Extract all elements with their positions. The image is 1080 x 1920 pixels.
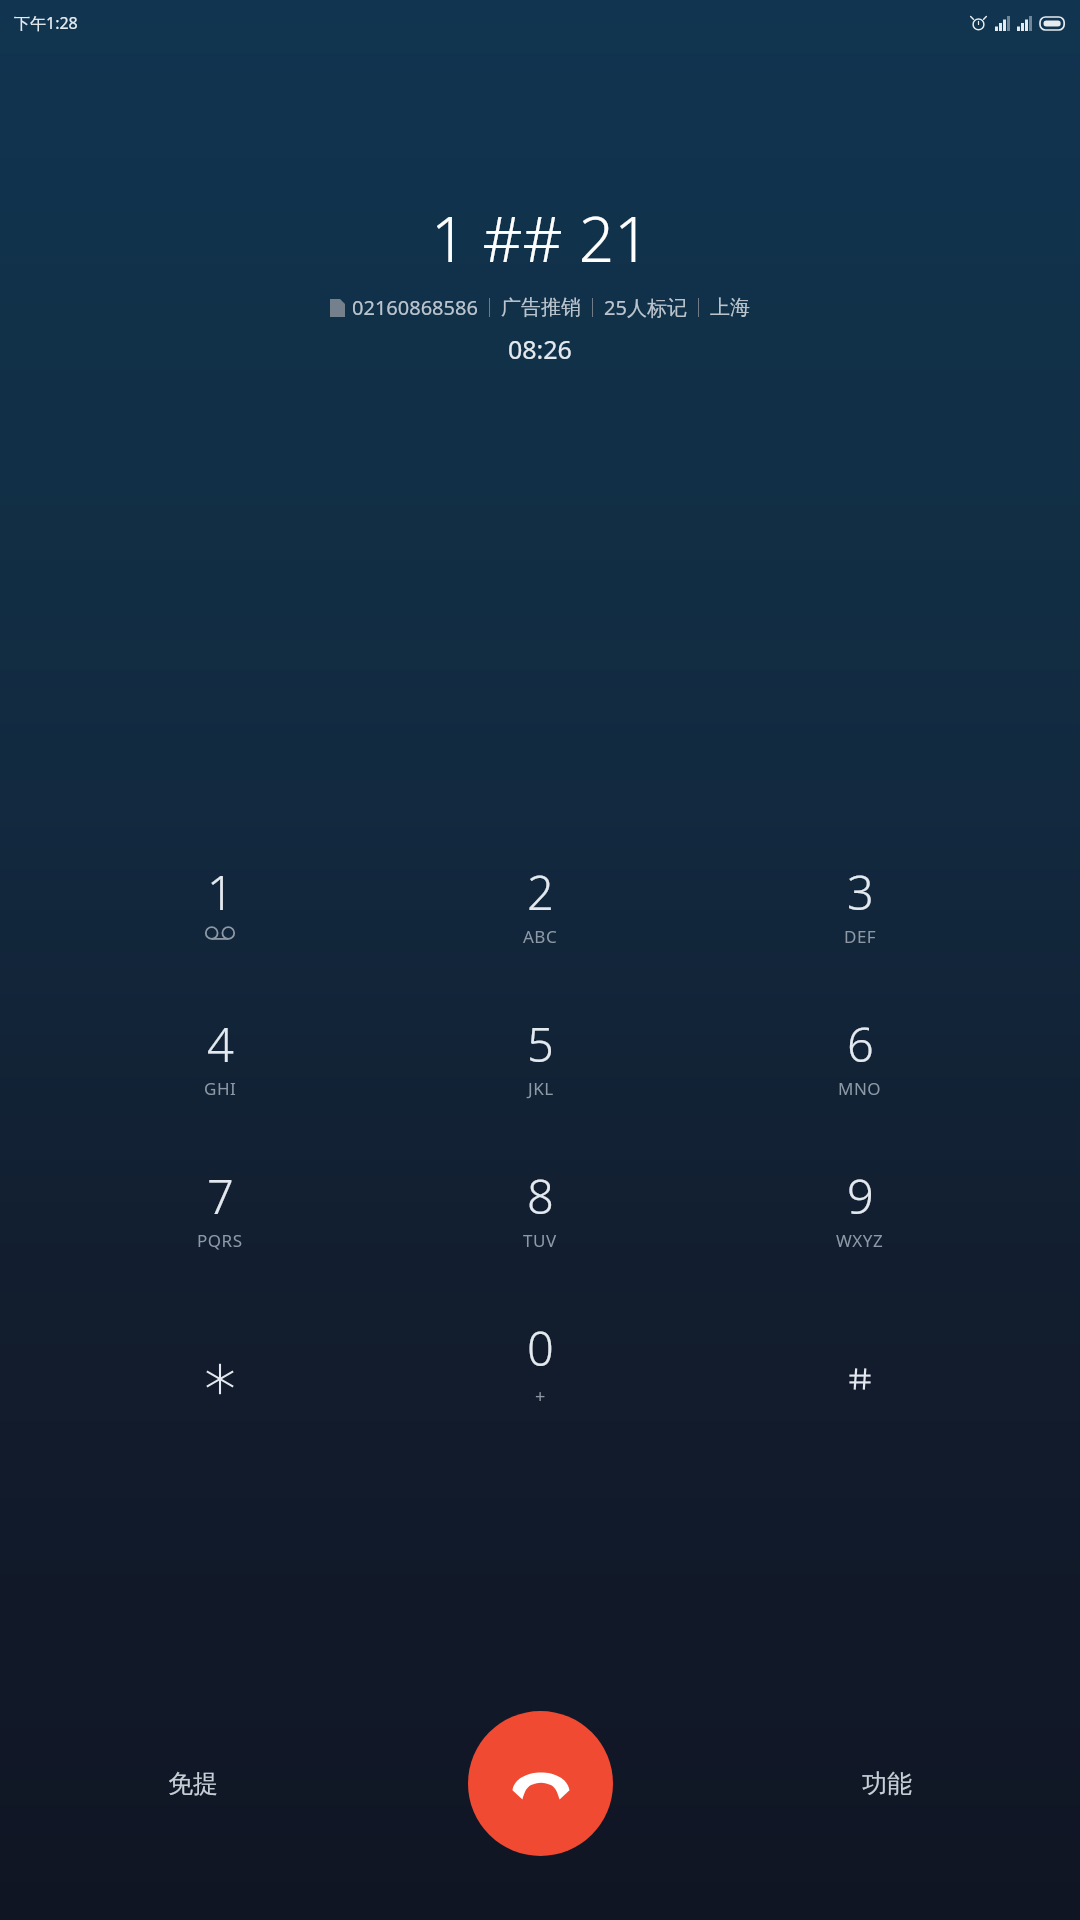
button[interactable]: End call [468,1711,613,1856]
button[interactable]: 7 [60,1164,380,1316]
staticText: 免提 [168,1768,218,1799]
staticText: 2 [527,860,554,924]
staticText: 1 ## 21 [431,196,650,280]
button[interactable]: Pound [700,1316,1020,1468]
button[interactable]: 5 [380,1012,700,1164]
other: Star [201,1360,239,1398]
staticText: MNO [838,1077,882,1100]
other: Pound [841,1360,879,1398]
button[interactable]: 3 [700,860,1020,1012]
button[interactable]: Star [60,1316,380,1468]
staticText: 3 [847,860,874,924]
staticText: 广告推销 [501,295,581,320]
button[interactable]: 免提 [150,1756,236,1811]
staticText: 下午1:28 [14,12,78,34]
button[interactable]: 1 [60,860,380,1012]
staticText: ABC [523,925,558,948]
staticText: 功能 [862,1768,912,1799]
staticText: WXYZ [836,1229,884,1252]
staticText: JKL [528,1077,554,1100]
button[interactable]: 4 [60,1012,380,1164]
staticText: 8 [527,1164,554,1228]
button[interactable]: 功能 [844,1756,930,1811]
staticText: 6 [847,1012,874,1076]
staticText: 02160868586 [352,294,478,321]
staticText: 1 [207,860,234,924]
button[interactable]: 9 [700,1164,1020,1316]
staticText: GHI [204,1077,237,1100]
staticText: PQRS [197,1229,243,1252]
staticText: + [535,1384,546,1409]
staticText: 25人标记 [604,294,687,321]
staticText: 0 [527,1316,554,1380]
staticText: 4 [207,1012,234,1076]
staticText: 7 [207,1164,234,1228]
button[interactable]: 2 [380,860,700,1012]
staticText: DEF [844,925,877,948]
staticText: 08:26 [508,332,572,366]
button[interactable]: 8 [380,1164,700,1316]
staticText: 9 [847,1164,874,1228]
staticText: 5 [527,1012,554,1076]
button[interactable]: 0 [380,1316,700,1468]
button[interactable]: 6 [700,1012,1020,1164]
staticText: 上海 [710,295,750,320]
staticText: TUV [523,1229,557,1252]
